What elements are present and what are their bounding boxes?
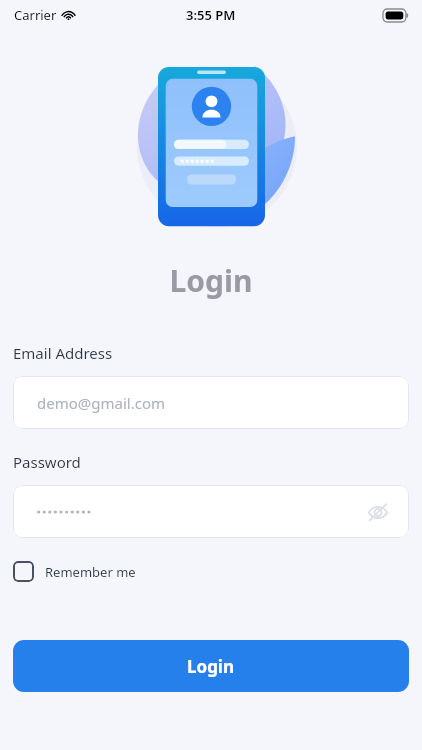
staticText: Password — [13, 452, 81, 472]
button[interactable]: demo@gmail.com — [13, 376, 409, 429]
button[interactable]: Show password — [13, 485, 409, 538]
staticText: Login — [0, 260, 422, 301]
button[interactable]: Login — [13, 640, 409, 692]
staticText: Remember me — [45, 563, 136, 581]
staticText: Login — [187, 655, 235, 678]
staticText: 3:55 PM — [186, 6, 236, 24]
staticText: demo@gmail.com — [37, 393, 165, 413]
staticText: Email Address — [13, 343, 113, 363]
button[interactable]: Remember me — [13, 561, 136, 582]
staticText: Carrier — [14, 6, 57, 24]
button[interactable]: Show password — [361, 495, 395, 529]
